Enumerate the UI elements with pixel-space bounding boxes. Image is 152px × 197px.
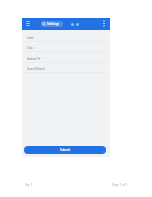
button[interactable]: Settings <box>41 21 63 27</box>
button[interactable]: Submit <box>24 146 106 154</box>
button[interactable]: Android TV <box>22 56 110 67</box>
staticText: Label <box>27 36 34 40</box>
button[interactable]: Sound/Default <box>22 66 110 77</box>
staticText: Chip <box>27 46 33 50</box>
button[interactable]: More options <box>100 20 107 27</box>
button[interactable]: Label <box>22 35 110 46</box>
staticText: Settings <box>47 22 60 26</box>
staticText: Page 1 of 1 <box>112 183 128 187</box>
button[interactable]: Navigation menu <box>24 20 31 27</box>
staticText: Submit <box>60 148 71 152</box>
staticText: Sound/Default <box>27 67 45 71</box>
button[interactable]: Chip <box>22 45 110 56</box>
staticText: Android TV <box>27 57 41 61</box>
staticText: Fig. 1 <box>25 183 33 187</box>
button[interactable]: Account <box>74 21 81 28</box>
button[interactable]: Help <box>69 21 76 28</box>
